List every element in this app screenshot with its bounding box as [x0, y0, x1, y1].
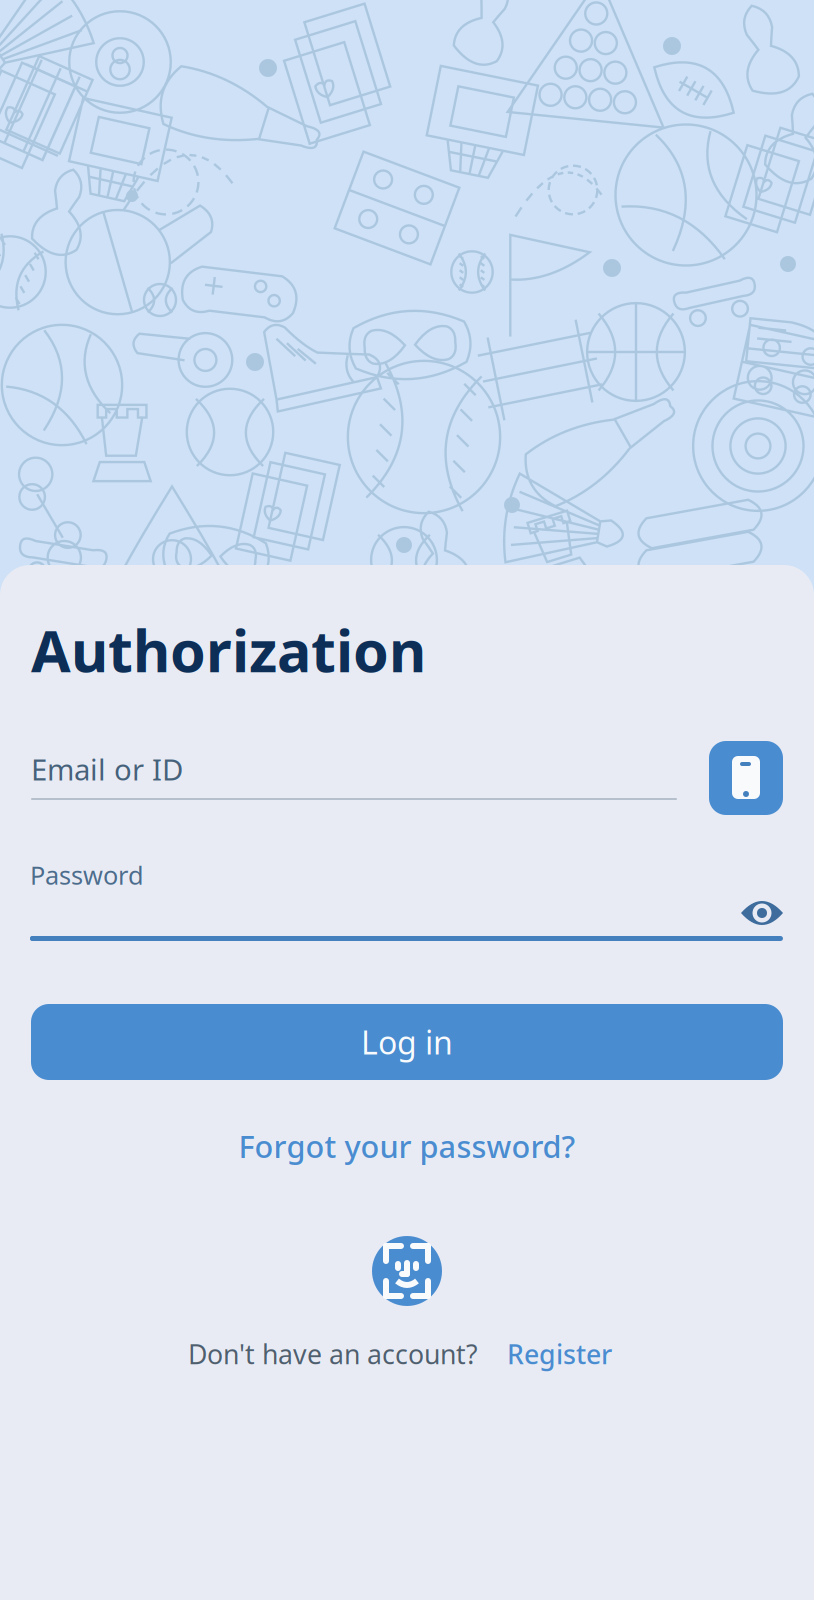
staticText: Log in [361, 1021, 453, 1063]
button[interactable]: Password [30, 860, 710, 946]
staticText: Authorization [31, 612, 426, 688]
button[interactable]: Forgot your password? [31, 1121, 783, 1171]
button[interactable]: Register [507, 1336, 612, 1372]
button[interactable]: Sign in with Face ID [372, 1236, 442, 1306]
staticText: Forgot your password? [238, 1126, 575, 1166]
button[interactable]: Sign in with device [709, 741, 783, 815]
button[interactable]: Show password [738, 896, 786, 930]
staticText: Register [507, 1336, 612, 1372]
staticText: Don't have an account? [188, 1336, 478, 1372]
staticText: Password [30, 858, 144, 892]
staticText: Email or ID [31, 749, 183, 788]
button[interactable]: Log in [31, 1004, 783, 1080]
button[interactable]: Email or ID [31, 739, 677, 801]
